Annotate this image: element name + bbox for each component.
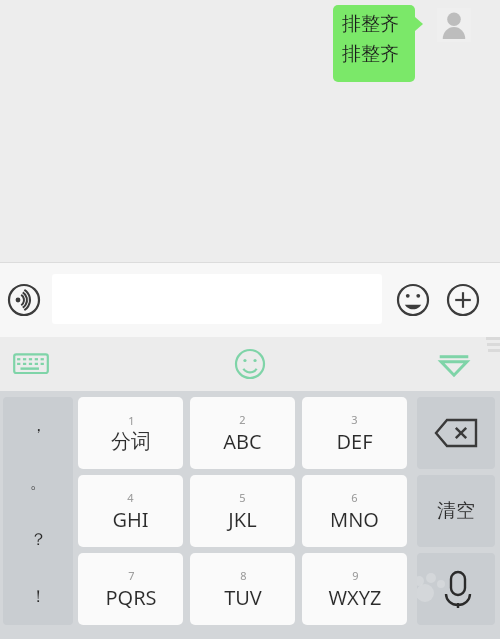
staticText: ABC — [223, 428, 262, 455]
button[interactable]: ， — [3, 397, 73, 454]
staticText: 2 — [239, 412, 246, 427]
staticText: 4 — [127, 490, 134, 505]
staticText: DEF — [336, 428, 373, 455]
button[interactable]: 9 — [302, 553, 407, 625]
staticText: MNO — [330, 506, 379, 533]
button[interactable]: 6 — [302, 475, 407, 547]
button[interactable]: 3 — [302, 397, 407, 469]
staticText: 8 — [240, 568, 247, 583]
staticText: 。 — [30, 472, 47, 493]
staticText: ？ — [30, 529, 47, 550]
button[interactable]: 1 — [78, 397, 183, 469]
staticText: 清空 — [437, 499, 475, 523]
staticText: 9 — [352, 568, 359, 583]
staticText: 7 — [128, 568, 135, 583]
staticText: 排整齐 — [342, 12, 399, 36]
button[interactable]: Voice input — [5, 281, 43, 319]
button[interactable]: 。 — [3, 454, 73, 511]
button[interactable]: 5 — [190, 475, 295, 547]
staticText: GHI — [112, 506, 149, 533]
button[interactable]: Emoji panel — [233, 347, 267, 381]
staticText: TUV — [224, 584, 262, 611]
button[interactable]: More — [444, 281, 482, 319]
staticText: JKL — [228, 506, 257, 533]
staticText: WXYZ — [328, 584, 382, 611]
button[interactable]: Backspace — [417, 397, 495, 469]
button[interactable]: Emoji — [394, 281, 432, 319]
button[interactable]: 排整齐 — [333, 5, 415, 82]
staticText: ！ — [30, 586, 47, 607]
button[interactable]: 2 — [190, 397, 295, 469]
button[interactable]: 4 — [78, 475, 183, 547]
button[interactable]: ！ — [3, 568, 73, 625]
staticText: 分词 — [111, 429, 151, 454]
staticText: 排整齐 — [342, 42, 399, 66]
staticText: 5 — [239, 490, 246, 505]
button[interactable]: Voice — [417, 553, 495, 625]
staticText: 1 — [128, 413, 135, 428]
button[interactable]: Hide keyboard — [437, 350, 471, 378]
button[interactable]: ？ — [3, 511, 73, 568]
button[interactable]: 清空 — [417, 475, 495, 547]
button[interactable]: 7 — [78, 553, 183, 625]
staticText: 6 — [351, 490, 358, 505]
button[interactable]: Keyboard — [10, 349, 52, 379]
staticText: ， — [30, 415, 47, 436]
staticText: PQRS — [105, 584, 157, 611]
staticText: 3 — [351, 412, 358, 427]
button[interactable]: 8 — [190, 553, 295, 625]
